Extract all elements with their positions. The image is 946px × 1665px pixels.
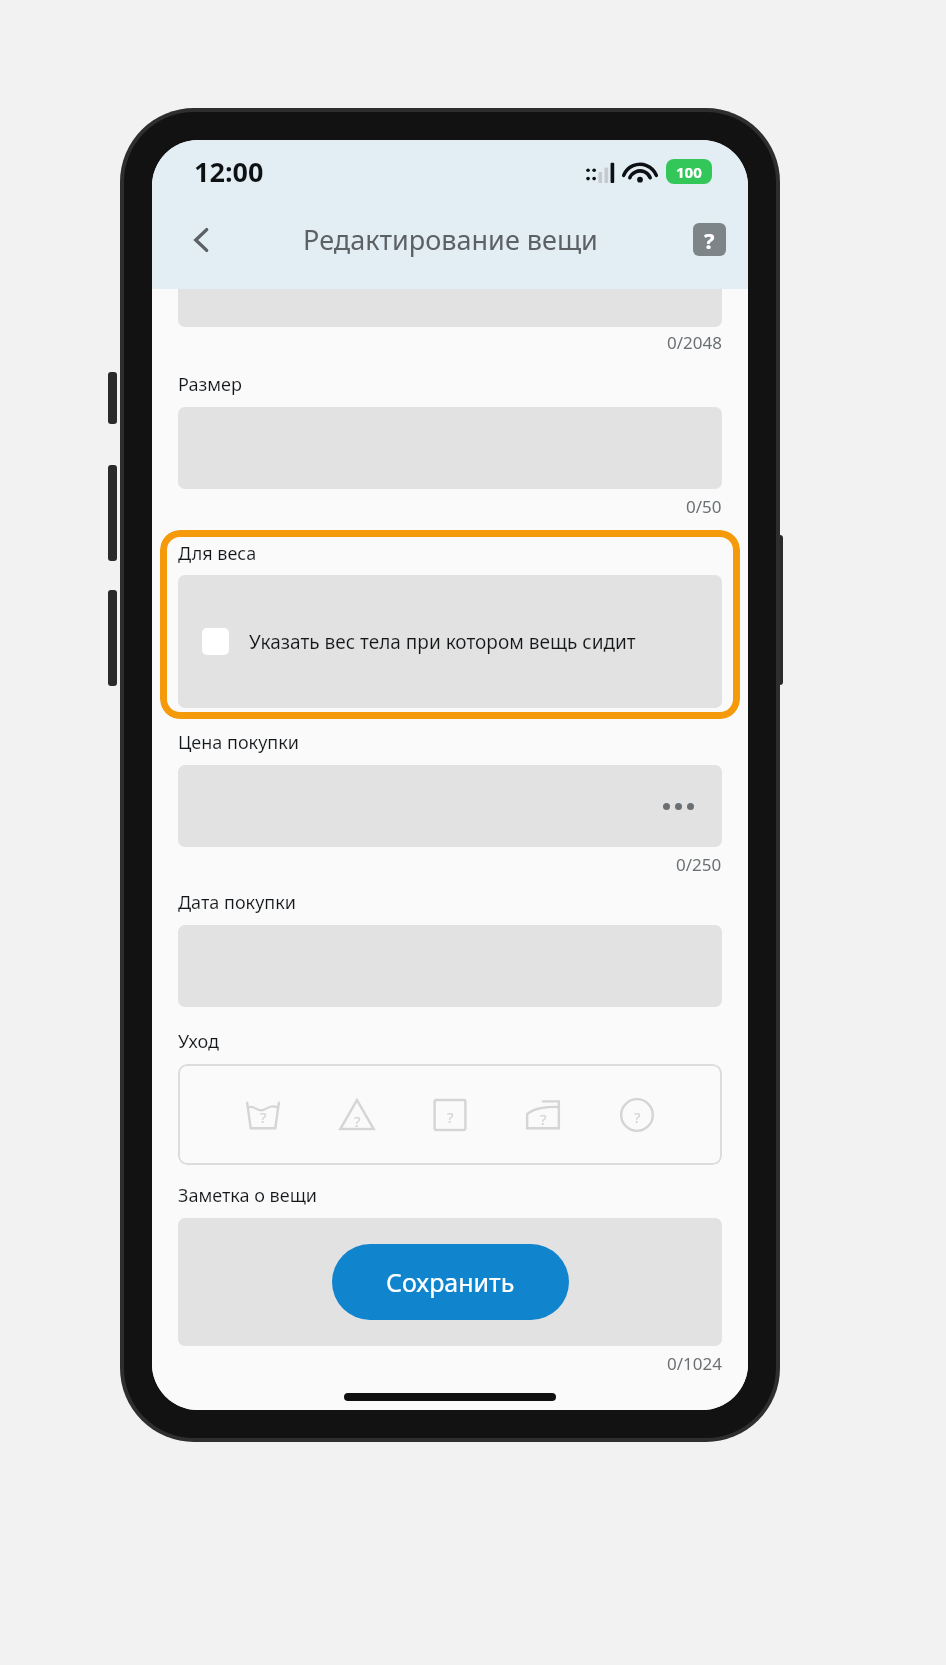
staticText: 0/250 [676,853,722,876]
staticText: Для веса [178,541,257,566]
button[interactable]: Washing [237,1089,289,1141]
staticText: 12:00 [194,153,264,190]
staticText: ? [260,1107,267,1127]
button[interactable]: Back [174,212,230,268]
button[interactable] [178,765,722,847]
button[interactable]: Help [693,223,726,256]
button[interactable]: Tumble drying [424,1089,476,1141]
staticText: ? [634,1107,641,1127]
button[interactable]: Specify body weight [202,628,229,655]
staticText: 100 [676,162,702,182]
button[interactable]: Specify body weight [178,575,722,708]
button[interactable]: Сохранить [332,1244,569,1320]
staticText: Указать вес тела при котором вещь сидит [249,629,636,655]
button[interactable]: Ironing [517,1089,569,1141]
staticText: ? [354,1111,361,1131]
staticText: Уход [178,1029,219,1054]
staticText: Дата покупки [178,890,296,915]
button[interactable]: Dry cleaning [611,1089,663,1141]
staticText: Цена покупки [178,730,299,755]
staticText: ? [704,225,715,255]
button[interactable]: Сохранить [178,1218,722,1346]
staticText: Размер [178,372,242,397]
staticText: ? [540,1109,547,1129]
staticText: 0/1024 [667,1352,722,1375]
staticText: ? [447,1107,454,1127]
staticText: 0/2048 [667,331,722,354]
button[interactable]: Bleaching [331,1089,383,1141]
staticText: Заметка о вещи [178,1183,317,1208]
staticText: Редактирование вещи [303,221,598,258]
staticText: 0/50 [686,495,722,518]
staticText: Сохранить [386,1265,515,1299]
